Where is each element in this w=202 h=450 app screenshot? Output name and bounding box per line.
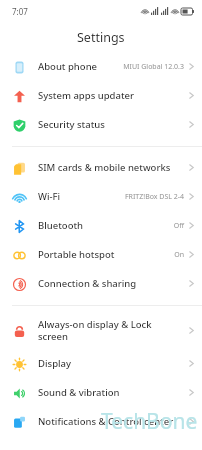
staticText: Security status (38, 118, 189, 131)
button[interactable]: System apps updater (0, 81, 202, 110)
button[interactable]: Security status (0, 110, 202, 139)
button[interactable]: Always-on display & Lock screen (0, 312, 202, 349)
button[interactable]: Sound & vibration (0, 378, 202, 407)
button[interactable]: Wi-Fi (0, 182, 202, 211)
staticText: Wi-Fi (38, 190, 124, 203)
staticText: 7:07 (12, 6, 28, 17)
staticText: Notifications & Control center (38, 415, 189, 428)
button[interactable]: Display (0, 349, 202, 378)
staticText: Off (173, 221, 184, 231)
staticText: On (174, 250, 184, 260)
button[interactable]: Connection & sharing (0, 269, 202, 298)
button[interactable]: SIM cards & mobile networks (0, 153, 202, 182)
staticText: MIUI Global 12.0.3 (123, 62, 184, 72)
staticText: Display (38, 357, 189, 370)
staticText: Connection & sharing (38, 277, 189, 290)
button[interactable]: Portable hotspot (0, 240, 202, 269)
button[interactable]: Notifications & Control center (0, 407, 202, 436)
staticText: Portable hotspot (38, 248, 174, 261)
staticText: About phone (38, 60, 123, 73)
staticText: SIM cards & mobile networks (38, 161, 189, 174)
staticText: FRITZ!Box DSL 2-4 (124, 192, 184, 202)
staticText: Bluetooth (38, 219, 173, 232)
button[interactable]: Bluetooth (0, 211, 202, 240)
staticText: Always-on display & Lock screen (38, 318, 189, 343)
staticText: Settings (77, 29, 125, 46)
staticText: System apps updater (38, 89, 189, 102)
staticText: Sound & vibration (38, 386, 189, 399)
staticText: TechBone (101, 407, 198, 436)
button[interactable]: About phone (0, 52, 202, 81)
